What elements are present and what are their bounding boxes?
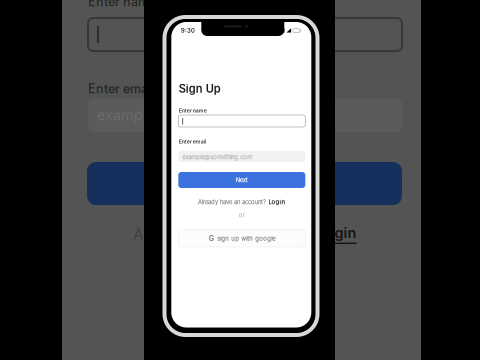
staticText: Enter name [179,107,207,114]
staticText: Login [317,224,356,242]
staticText: Enter name [88,0,156,8]
staticText: example@something.com [97,106,277,124]
staticText: 9:30 [181,27,195,34]
staticText: Login [269,198,286,206]
staticText: G [209,234,214,243]
staticText: sign up with google [217,235,275,242]
staticText: Enter email [179,138,206,145]
staticText: Already have an account? [133,225,311,243]
staticText: Already have an account? [198,198,266,206]
staticText: Enter email [88,81,154,94]
button[interactable]: Already have an account? [178,197,305,207]
button[interactable]: Next [178,172,305,188]
button[interactable]: G [178,230,305,247]
staticText: Next [236,176,248,184]
staticText: Sign Up [179,82,221,94]
staticText: example@something.com [182,153,252,161]
staticText: or [239,211,245,219]
